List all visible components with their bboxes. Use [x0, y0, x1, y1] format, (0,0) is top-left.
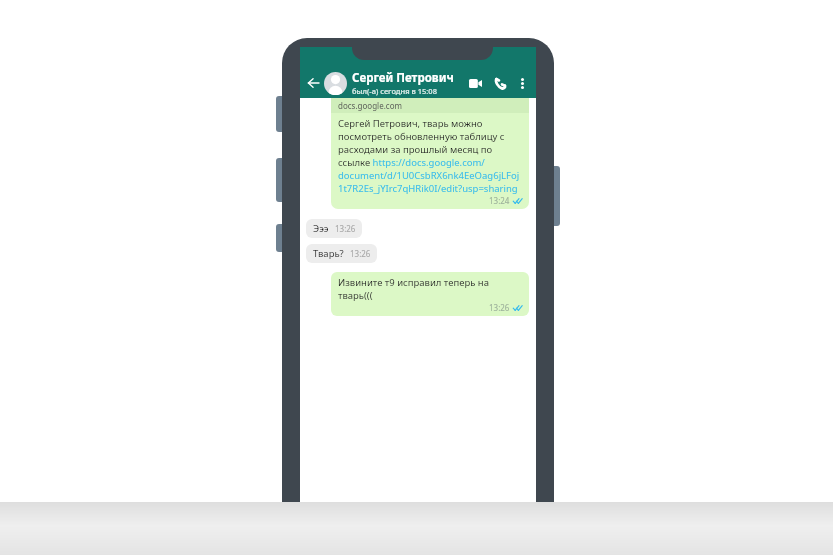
button[interactable]: Извините т9 исправил теперь на тварь(((	[331, 272, 529, 316]
staticText: 13:26	[350, 248, 371, 259]
staticText: 13:24	[489, 195, 510, 206]
staticText: 13:26	[335, 223, 356, 234]
staticText: Тварь?	[313, 247, 344, 260]
button[interactable]: Сергей Петрович	[352, 70, 464, 96]
staticText: Сергей Петрович	[352, 70, 454, 86]
staticText: Эээ	[313, 222, 329, 235]
button[interactable]: Эээ	[306, 219, 362, 238]
staticText: Извините т9 исправил теперь на тварь(((	[338, 276, 523, 302]
staticText: был(-а) сегодня в 15:08	[352, 86, 437, 96]
button[interactable]: Video call	[464, 72, 486, 94]
button[interactable]: Call	[489, 72, 511, 94]
button[interactable]: Back	[302, 72, 324, 94]
button[interactable]: Тварь?	[306, 244, 377, 263]
staticText: Сергей Петрович, тварь можно посмотреть …	[338, 117, 522, 195]
staticText: 13:26	[489, 302, 510, 313]
staticText: docs.google.com	[338, 100, 402, 111]
button[interactable]: docs.google.com	[331, 98, 529, 209]
button[interactable]: More options	[512, 73, 532, 93]
